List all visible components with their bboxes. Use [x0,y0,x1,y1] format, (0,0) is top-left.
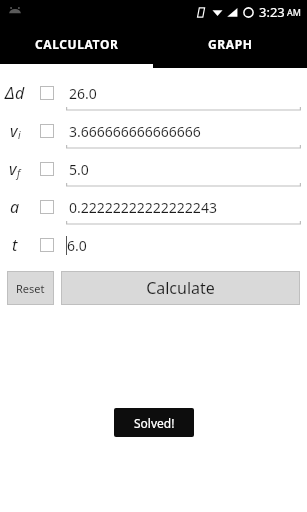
staticText: 5.0 [69,160,89,179]
button[interactable]: 6.0 [66,226,301,264]
staticText: Calculate [146,277,215,299]
button[interactable]: CALCULATOR [0,24,153,64]
staticText: Solved! [134,415,175,431]
staticText: i [18,128,21,142]
button[interactable]: Calculate [61,271,300,305]
staticText: 26.0 [69,84,97,103]
button[interactable]: Lock a value [34,194,60,220]
staticText: v [9,158,17,180]
staticText: f [17,166,21,180]
button[interactable]: Lock v value [34,156,60,182]
staticText: a [10,196,20,218]
button[interactable]: 26.0 [66,74,301,112]
button[interactable]: Lock t value [34,232,60,258]
staticText: AM [287,6,301,18]
staticText: d [15,82,25,104]
staticText: GRAPH [208,36,253,52]
staticText: Reset [16,281,45,296]
staticText: 3:23 [259,3,285,21]
button[interactable]: Reset [7,271,54,305]
staticText: 3.666666666666666 [69,122,201,141]
button[interactable]: Lock d value [34,80,60,106]
staticText: CALCULATOR [35,36,119,52]
staticText: v [10,120,18,142]
button[interactable]: 3.666666666666666 [66,112,301,150]
button[interactable]: 0.22222222222222243 [66,188,301,226]
staticText: t [12,234,18,256]
staticText: 0.22222222222222243 [69,198,217,217]
button[interactable]: Lock v value [34,118,60,144]
staticText: 6.0 [67,236,87,255]
button[interactable]: 5.0 [66,150,301,188]
button[interactable]: GRAPH [153,24,307,64]
staticText: Δ [5,82,15,104]
